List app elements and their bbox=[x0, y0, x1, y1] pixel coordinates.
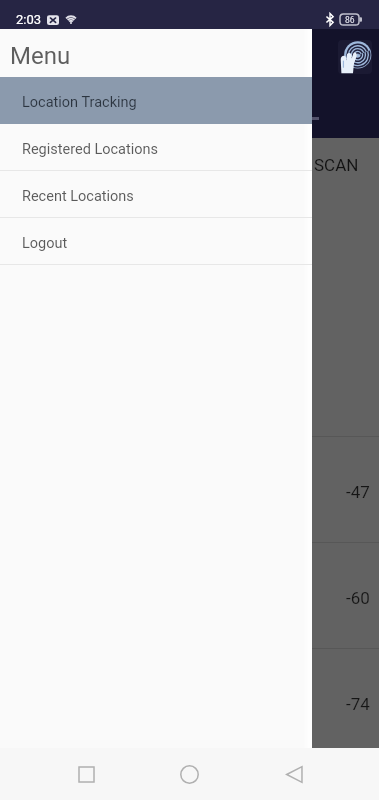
staticText: Menu bbox=[10, 42, 71, 70]
staticText: Registered Locations bbox=[22, 141, 159, 158]
staticText: -47 bbox=[346, 482, 370, 502]
staticText: Recent Locations bbox=[22, 188, 134, 205]
button[interactable]: Registered Locations bbox=[0, 124, 312, 171]
button[interactable]: -47 bbox=[0, 436, 379, 542]
staticText: Location Tracking bbox=[22, 94, 137, 111]
button[interactable]: -60 bbox=[0, 542, 379, 648]
button[interactable]: Logout bbox=[0, 218, 312, 265]
button[interactable]: Home bbox=[166, 751, 213, 798]
staticText: -60 bbox=[346, 588, 370, 608]
staticText: 86 bbox=[345, 15, 355, 25]
button[interactable]: Back bbox=[271, 751, 318, 798]
staticText: 2:03 bbox=[16, 12, 42, 27]
staticText: SCAN bbox=[314, 155, 359, 175]
staticText: Logout bbox=[22, 235, 68, 252]
button[interactable]: Recent Locations bbox=[0, 171, 312, 218]
staticText: -74 bbox=[346, 694, 370, 714]
button[interactable]: Recent apps bbox=[63, 751, 110, 798]
button[interactable]: Location Tracking bbox=[0, 77, 312, 124]
button[interactable]: -74 bbox=[0, 648, 379, 754]
